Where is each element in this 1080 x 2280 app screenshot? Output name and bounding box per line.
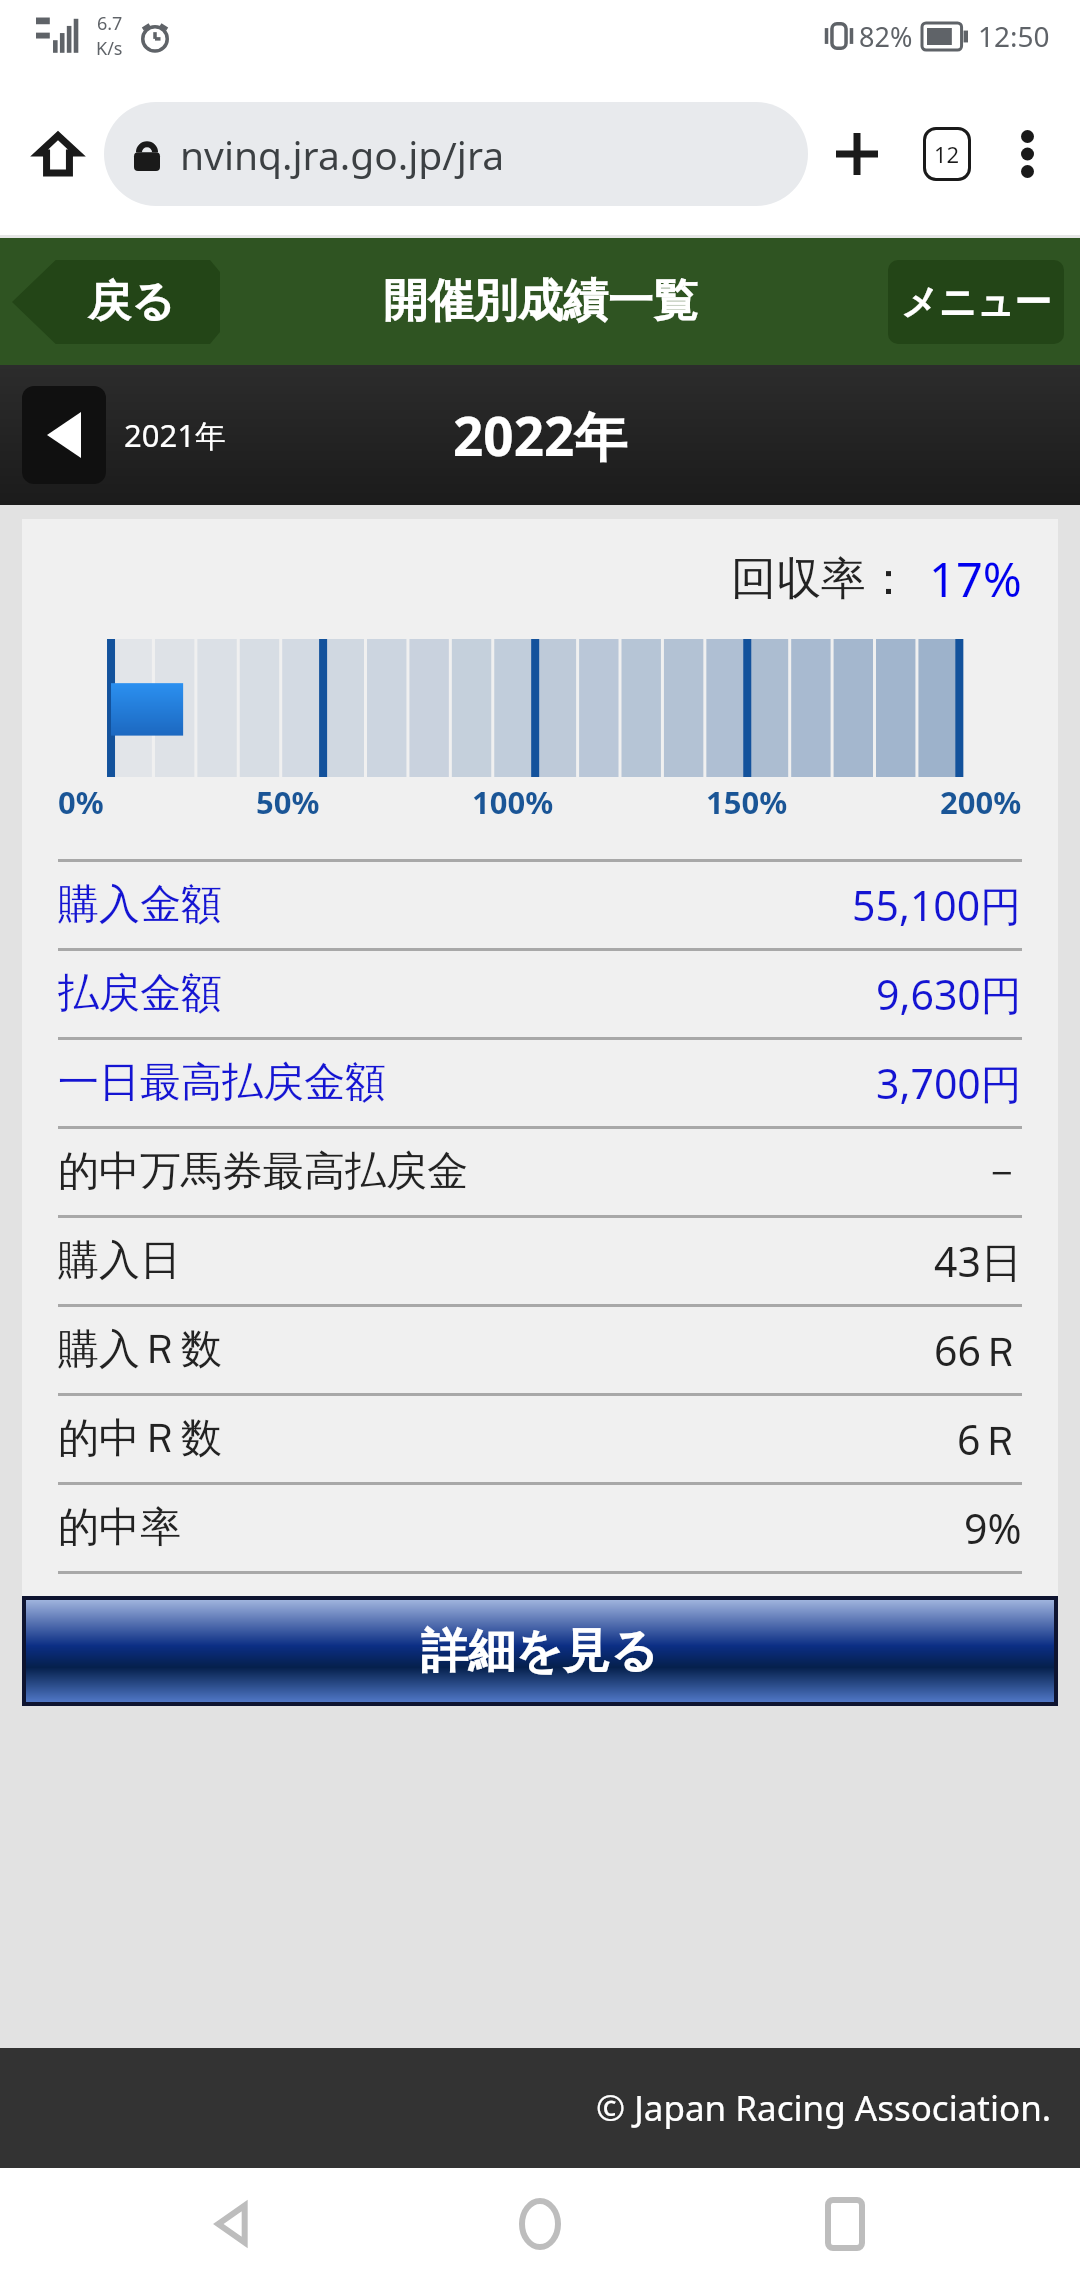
button[interactable]: 詳細を見る [26,1600,1054,1702]
staticText: 払戻金額 [58,968,222,1020]
button[interactable]: 購入Ｒ数 [58,1307,1022,1393]
staticText: 回収率： [731,551,911,608]
staticText: 100% [472,781,554,823]
button[interactable]: Home [470,2168,610,2280]
staticText: 6.7 [97,11,123,36]
button[interactable]: Recent apps [775,2168,915,2280]
staticText: メニュー [901,279,1052,326]
button[interactable]: 的中率 [58,1485,1022,1571]
staticText: 的中率 [58,1502,181,1554]
staticText: 12 [934,139,960,169]
staticText: 150% [706,781,788,823]
staticText: 一日最高払戻金額 [58,1057,386,1109]
staticText: 2021年 [124,414,226,456]
button[interactable]: Tabs [908,115,986,193]
staticText: 的中万馬券最高払戻金 [58,1146,468,1198]
button[interactable]: 2021年 [22,386,226,484]
staticText: 66Ｒ [934,1322,1022,1378]
staticText: 12:50 [978,17,1050,55]
button[interactable]: 的中万馬券最高払戻金 [58,1129,1022,1215]
staticText: － [981,1146,1022,1198]
staticText: 50% [256,781,320,823]
button[interactable]: 的中Ｒ数 [58,1396,1022,1482]
button[interactable]: 戻る [12,260,220,344]
staticText: 購入Ｒ数 [58,1324,222,1376]
staticText: 0% [58,781,104,823]
staticText: 的中Ｒ数 [58,1413,222,1465]
button[interactable]: Back [165,2168,305,2280]
staticText: 購入日 [58,1235,181,1287]
staticText: K/s [96,36,123,61]
staticText: 6Ｒ [957,1411,1022,1467]
staticText: 82% [859,18,913,55]
button[interactable]: nvinq.jra.go.jp/jra [104,102,808,206]
staticText: 9% [964,1500,1022,1556]
staticText: nvinq.jra.go.jp/jra [180,128,505,181]
staticText: 17% [929,547,1022,611]
staticText: © Japan Racing Association. [596,2084,1052,2132]
staticText: 2022年 [453,399,628,471]
staticText: 戻る [88,275,176,329]
staticText: 詳細を見る [421,1622,659,1681]
button[interactable]: 一日最高払戻金額 [58,1040,1022,1126]
button[interactable]: メニュー [888,260,1064,344]
staticText: 55,100円 [852,877,1022,933]
button[interactable]: More options [994,121,1060,187]
button[interactable]: 購入金額 [58,862,1022,948]
staticText: 43日 [934,1233,1022,1289]
button[interactable]: 購入日 [58,1218,1022,1304]
staticText: 200% [940,781,1022,823]
staticText: 3,700円 [876,1055,1022,1111]
staticText: 購入金額 [58,879,222,931]
staticText: 9,630円 [876,966,1022,1022]
button[interactable]: Home [20,116,96,192]
button[interactable]: New tab [818,115,896,193]
button[interactable]: 払戻金額 [58,951,1022,1037]
staticText: 開催別成績一覧 [383,273,698,330]
